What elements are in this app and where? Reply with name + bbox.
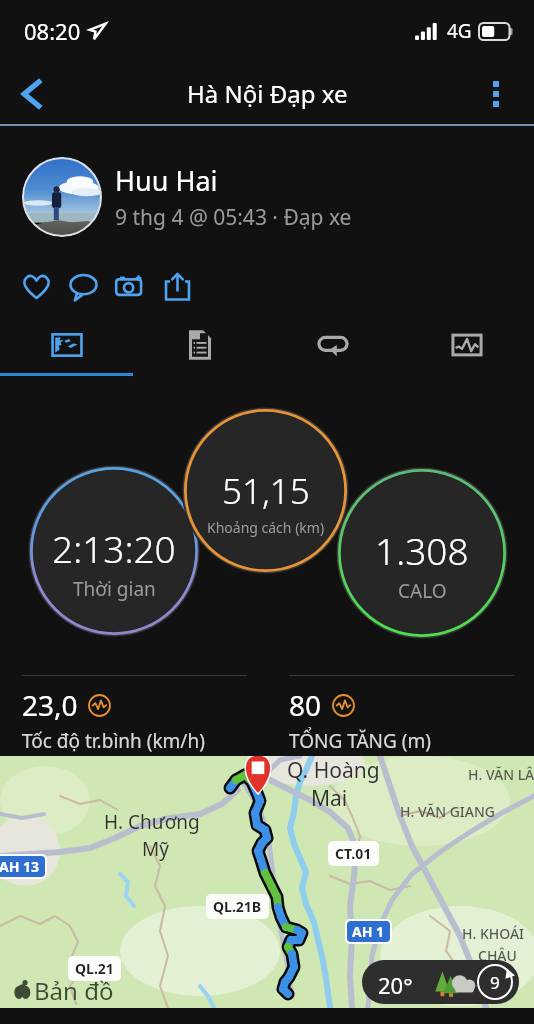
button[interactable]: Add photo <box>107 256 154 316</box>
staticText: H. Chương <box>104 809 200 835</box>
staticText: 51,15 <box>222 467 310 515</box>
button[interactable]: Share <box>154 256 201 316</box>
button[interactable]: Map <box>0 314 133 376</box>
staticText: 08:20 <box>24 16 81 46</box>
staticText: QL.21B <box>213 897 262 916</box>
button[interactable]: Laps <box>266 314 400 376</box>
staticText: Q. Hoàng <box>287 756 380 785</box>
staticText: AH 1 <box>352 922 385 941</box>
button[interactable]: 23,0 <box>22 665 247 754</box>
staticText: CT.01 <box>335 844 372 863</box>
staticText: 80 <box>289 686 322 724</box>
button[interactable]: Profile photo <box>22 157 102 237</box>
staticText: H. KHOÁI <box>462 924 525 943</box>
staticText: Mai <box>311 784 348 813</box>
staticText: Mỹ <box>142 836 169 862</box>
staticText: H. VĂN GIANG <box>400 802 495 821</box>
staticText: CHÂU <box>478 946 517 965</box>
staticText: Thời gian <box>73 576 156 602</box>
staticText: 23,0 <box>22 686 78 724</box>
button[interactable]: Weather 20 degrees <box>362 960 519 1004</box>
button[interactable]: Back <box>0 62 62 125</box>
staticText: H. VĂN LÂ <box>468 765 534 784</box>
button[interactable]: Route map <box>0 756 534 1008</box>
staticText: Khoảng cách (km) <box>207 518 325 537</box>
button[interactable]: Analysis <box>400 314 534 376</box>
staticText: 20° <box>378 970 413 1000</box>
staticText: 9 <box>490 971 500 994</box>
staticText: QL.21 <box>75 959 114 978</box>
button[interactable]: 80 <box>289 665 514 754</box>
staticText: 2:13:20 <box>52 523 176 573</box>
staticText: Hà Nội Đạp xe <box>187 77 348 110</box>
button[interactable]: Khoảng cách (km) <box>182 407 349 574</box>
button[interactable]: Like <box>13 256 60 316</box>
staticText: TỔNG TĂNG (m) <box>289 728 431 754</box>
staticText: 1.308 <box>375 525 469 575</box>
staticText: 4G <box>447 18 472 44</box>
staticText: 9 thg 4 @ 05:43 · Đạp xe <box>115 203 352 232</box>
button[interactable]: Splits <box>133 314 266 376</box>
staticText: Tốc độ tr.bình (km/h) <box>22 728 205 754</box>
button[interactable]: Comment <box>60 256 107 316</box>
staticText: AH 13 <box>0 857 40 876</box>
staticText: Huu Hai <box>115 162 218 199</box>
staticText: CALO <box>398 578 447 604</box>
button[interactable]: CALO <box>336 467 508 639</box>
button[interactable]: Thời gian <box>28 465 200 637</box>
button[interactable]: More options <box>458 62 534 125</box>
staticText: Bản đồ <box>34 974 114 1007</box>
